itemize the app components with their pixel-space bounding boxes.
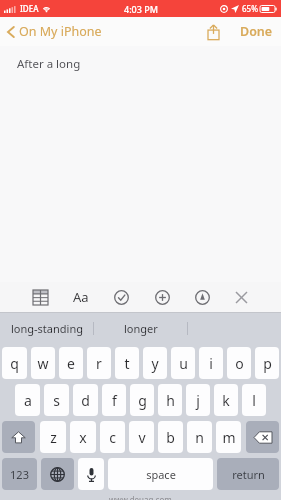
staticText: 65%	[242, 3, 258, 14]
button[interactable]: k	[214, 384, 238, 416]
staticText: t	[124, 354, 130, 373]
staticText: a	[24, 391, 32, 410]
button[interactable]: c	[100, 421, 125, 453]
button[interactable]: z	[40, 421, 66, 453]
staticText: z	[50, 428, 57, 447]
button[interactable]: p	[255, 347, 279, 379]
button[interactable]: return	[217, 458, 279, 490]
button[interactable]: i	[199, 347, 223, 379]
staticText: long-standing	[11, 321, 83, 336]
button[interactable]: longer	[94, 313, 187, 344]
button[interactable]: m	[216, 421, 241, 453]
button[interactable]: Add attachment	[152, 287, 173, 308]
staticText: longer	[124, 321, 158, 336]
button[interactable]: n	[187, 421, 212, 453]
button[interactable]: Share	[201, 20, 226, 44]
staticText: 4:03 PM	[124, 3, 158, 15]
button[interactable]: Table	[30, 287, 51, 308]
staticText: y	[151, 354, 159, 373]
staticText: return	[232, 467, 265, 482]
button[interactable]: Markup	[192, 287, 213, 308]
button[interactable]: l	[242, 384, 266, 416]
staticText: i	[209, 354, 213, 373]
button[interactable]: h	[158, 384, 182, 416]
button[interactable]: o	[227, 347, 251, 379]
button[interactable]: Checklist	[111, 287, 132, 308]
button[interactable]: d	[73, 384, 98, 416]
button[interactable]: u	[171, 347, 195, 379]
button[interactable]: q	[2, 347, 27, 379]
staticText: e	[67, 354, 75, 373]
staticText: p	[263, 354, 272, 373]
button[interactable]: On My iPhone	[0, 19, 110, 44]
staticText: On My iPhone	[19, 23, 102, 40]
staticText: IDEA	[20, 3, 39, 14]
staticText: www.deuaq.com	[109, 494, 172, 500]
staticText: m	[222, 428, 236, 447]
staticText: s	[53, 391, 60, 410]
staticText: 123	[10, 467, 29, 482]
staticText: Done	[240, 23, 273, 40]
button[interactable]: e	[59, 347, 83, 379]
staticText: space	[146, 467, 176, 482]
button[interactable]: long-standing	[0, 313, 93, 344]
button[interactable]: Close keyboard	[232, 288, 251, 307]
button[interactable]: space	[108, 458, 213, 490]
staticText: g	[138, 391, 147, 410]
button[interactable]: s	[44, 384, 69, 416]
staticText: Aa	[73, 288, 89, 306]
staticText: o	[235, 354, 244, 373]
button[interactable]: Text format	[70, 285, 92, 309]
staticText: h	[166, 391, 175, 410]
button[interactable]: y	[143, 347, 167, 379]
button[interactable]: Dictation	[78, 458, 104, 490]
button[interactable]: Delete	[246, 421, 279, 453]
button[interactable]: w	[31, 347, 55, 379]
staticText: u	[179, 354, 188, 373]
staticText: w	[37, 354, 49, 373]
staticText: j	[196, 391, 200, 410]
button[interactable]: v	[129, 421, 154, 453]
button[interactable]: g	[130, 384, 154, 416]
button[interactable]: t	[115, 347, 139, 379]
button[interactable]: j	[186, 384, 210, 416]
button[interactable]: b	[158, 421, 183, 453]
button[interactable]: a	[15, 384, 40, 416]
button[interactable]: Switch keyboard	[41, 458, 74, 490]
staticText: After a long	[17, 56, 81, 72]
button[interactable]: r	[87, 347, 111, 379]
staticText: n	[195, 428, 204, 447]
button[interactable]: f	[102, 384, 126, 416]
staticText: x	[79, 428, 87, 447]
button[interactable]: x	[70, 421, 96, 453]
staticText: c	[109, 428, 116, 447]
staticText: d	[81, 391, 90, 410]
button[interactable]: 123	[2, 458, 37, 490]
staticText: b	[166, 428, 175, 447]
staticText: k	[222, 391, 230, 410]
staticText: f	[112, 391, 117, 410]
staticText: r	[96, 354, 102, 373]
staticText: q	[10, 354, 19, 373]
staticText: l	[252, 391, 256, 410]
staticText: v	[138, 428, 146, 447]
button[interactable]: Shift	[2, 421, 35, 453]
button[interactable]: Done	[232, 19, 281, 44]
